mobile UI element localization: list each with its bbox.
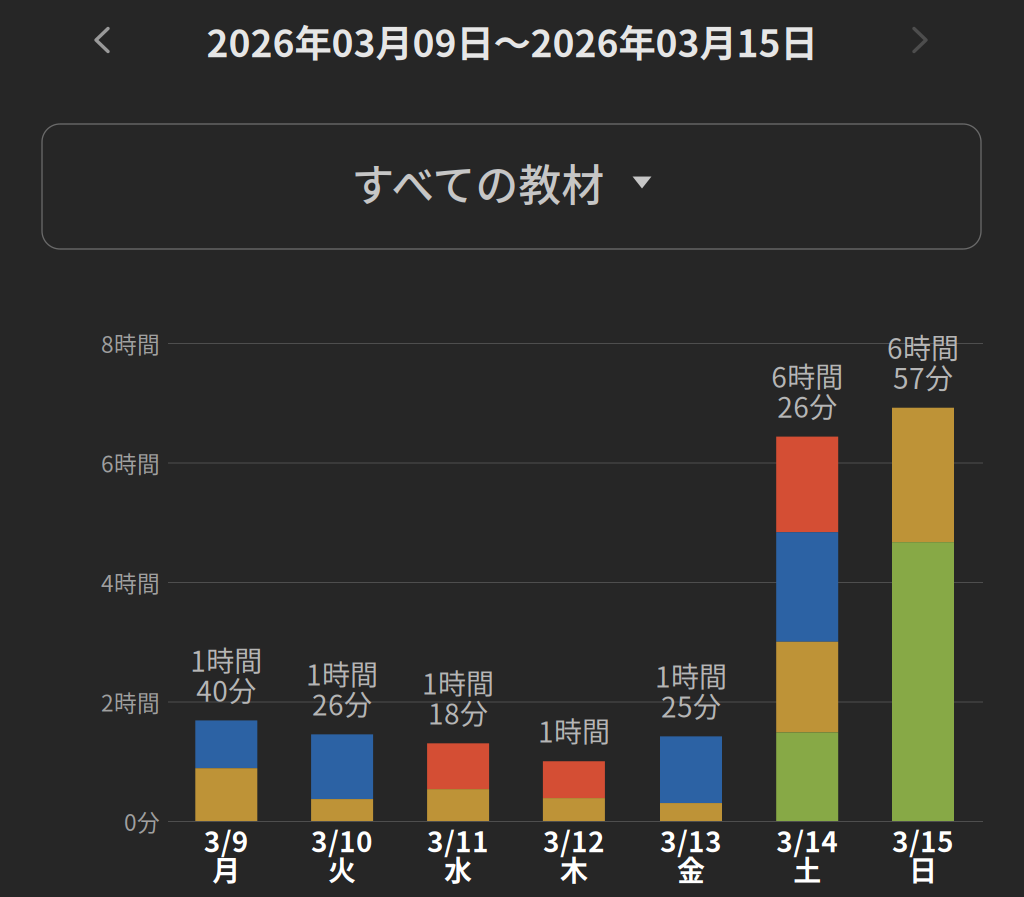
staticText: 水 — [444, 849, 472, 889]
staticText: 火 — [328, 849, 356, 889]
staticText: 1時間 — [422, 662, 494, 703]
staticText: 月 — [212, 849, 240, 889]
staticText: 3/10 — [311, 820, 373, 860]
staticText: 6時間 — [887, 326, 959, 367]
staticText: 土 — [793, 849, 821, 889]
staticText: 金 — [677, 849, 705, 889]
button[interactable]: Next week — [894, 15, 944, 65]
staticText: 57分 — [893, 356, 953, 397]
staticText: 1時間 — [538, 710, 610, 750]
button[interactable]: Previous week — [76, 15, 126, 65]
staticText: 26分 — [777, 385, 837, 426]
staticText: 6時間 — [771, 355, 843, 396]
staticText: 1時間 — [190, 639, 262, 680]
staticText: 6時間 — [101, 446, 160, 479]
staticText: 8時間 — [101, 327, 160, 359]
staticText: 3/9 — [204, 820, 249, 860]
staticText: 1時間 — [306, 653, 378, 694]
staticText: 2時間 — [101, 685, 160, 718]
staticText: 18分 — [428, 692, 488, 733]
staticText: 3/15 — [892, 820, 954, 860]
staticText: 木 — [560, 849, 588, 889]
staticText: 2026年03月09日～2026年03月15日 — [206, 14, 817, 68]
staticText: 日 — [909, 849, 937, 889]
staticText: 3/13 — [660, 820, 722, 860]
staticText: 3/14 — [776, 820, 838, 860]
staticText: 4時間 — [101, 566, 160, 598]
staticText: すべての教材 — [351, 152, 604, 213]
staticText: 26分 — [312, 683, 372, 724]
staticText: 25分 — [661, 685, 721, 726]
staticText: 0分 — [124, 805, 160, 837]
staticText: 1時間 — [655, 655, 727, 696]
staticText: 3/11 — [427, 820, 489, 860]
button[interactable]: すべての教材 — [42, 124, 981, 249]
staticText: 3/12 — [543, 820, 605, 860]
staticText: 40分 — [196, 669, 256, 710]
